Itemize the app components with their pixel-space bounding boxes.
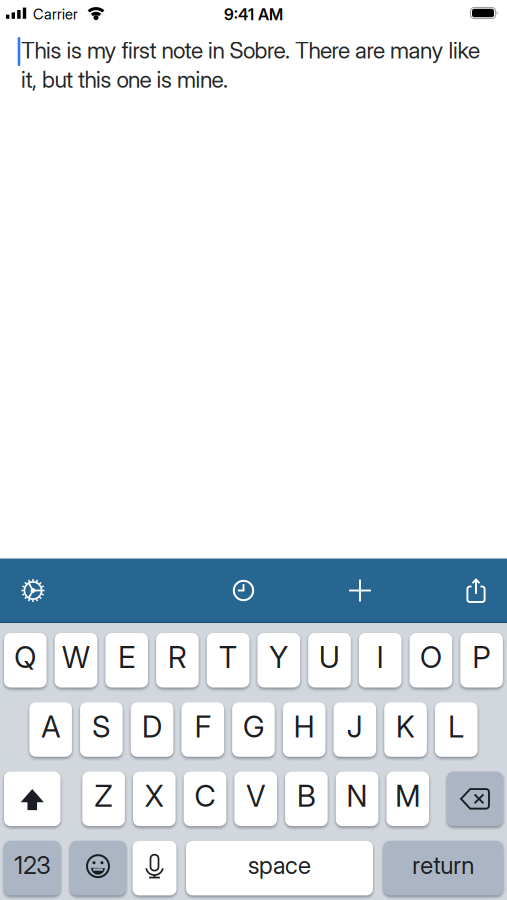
button[interactable]: Z xyxy=(82,772,125,826)
button[interactable]: G xyxy=(232,702,275,757)
button[interactable]: Delete xyxy=(447,772,503,826)
button[interactable]: L xyxy=(435,702,478,757)
staticText: R xyxy=(168,640,187,675)
button[interactable]: E xyxy=(105,633,148,687)
button[interactable]: Shift xyxy=(4,772,60,826)
button[interactable]: F xyxy=(181,702,224,757)
staticText: Y xyxy=(269,640,288,675)
button[interactable]: return xyxy=(383,841,503,895)
staticText: Z xyxy=(95,779,113,813)
staticText: Carrier xyxy=(33,5,78,23)
staticText: return xyxy=(412,851,474,879)
staticText: F xyxy=(195,709,211,744)
staticText: E xyxy=(118,640,135,675)
button[interactable]: S xyxy=(80,702,123,757)
button[interactable]: D xyxy=(131,702,173,757)
button[interactable]: Recent notes xyxy=(221,568,265,612)
button[interactable]: T xyxy=(207,633,249,687)
button[interactable]: A xyxy=(29,702,72,757)
button[interactable]: New note xyxy=(338,568,382,612)
staticText: 9:41 AM xyxy=(224,5,283,24)
button[interactable]: K xyxy=(384,702,427,757)
button[interactable]: Y xyxy=(257,633,300,687)
staticText: I xyxy=(377,640,384,675)
staticText: N xyxy=(347,779,368,813)
button[interactable]: U xyxy=(308,633,351,687)
staticText: D xyxy=(142,709,162,744)
staticText: space xyxy=(248,851,311,879)
button[interactable]: C xyxy=(184,772,226,826)
button[interactable]: I xyxy=(359,633,401,687)
staticText: J xyxy=(347,709,363,744)
button[interactable]: P xyxy=(460,633,503,687)
button[interactable]: J xyxy=(334,702,376,757)
staticText: V xyxy=(246,779,265,813)
button[interactable]: O xyxy=(410,633,452,687)
button[interactable]: Emoji xyxy=(70,841,126,895)
staticText: H xyxy=(294,709,315,744)
button[interactable]: W xyxy=(55,633,97,687)
staticText: W xyxy=(62,640,90,675)
staticText: P xyxy=(473,640,491,675)
staticText: 123 xyxy=(14,851,50,879)
staticText: This is my first note in Sobre. There ar… xyxy=(21,37,480,93)
button[interactable]: H xyxy=(283,702,325,757)
button[interactable]: M xyxy=(386,772,429,826)
staticText: Q xyxy=(14,640,36,675)
staticText: A xyxy=(41,709,60,744)
staticText: B xyxy=(297,779,316,813)
button[interactable]: V xyxy=(234,772,277,826)
staticText: O xyxy=(420,640,442,675)
staticText: T xyxy=(219,640,237,675)
button[interactable]: Q xyxy=(4,633,47,687)
staticText: M xyxy=(395,779,420,813)
button[interactable]: B xyxy=(285,772,328,826)
button[interactable]: Share xyxy=(453,568,497,612)
button[interactable]: X xyxy=(133,772,176,826)
button[interactable]: R xyxy=(156,633,199,687)
button[interactable]: Dictate xyxy=(132,841,176,895)
button[interactable]: space xyxy=(186,841,373,895)
button[interactable]: N xyxy=(336,772,378,826)
button[interactable]: Settings xyxy=(11,568,55,612)
staticText: G xyxy=(243,709,264,744)
button[interactable]: 123 xyxy=(4,841,60,895)
staticText: K xyxy=(396,709,415,744)
staticText: C xyxy=(194,779,215,813)
staticText: U xyxy=(319,640,340,675)
staticText: S xyxy=(92,709,110,744)
staticText: X xyxy=(145,779,164,813)
staticText: L xyxy=(448,709,464,744)
